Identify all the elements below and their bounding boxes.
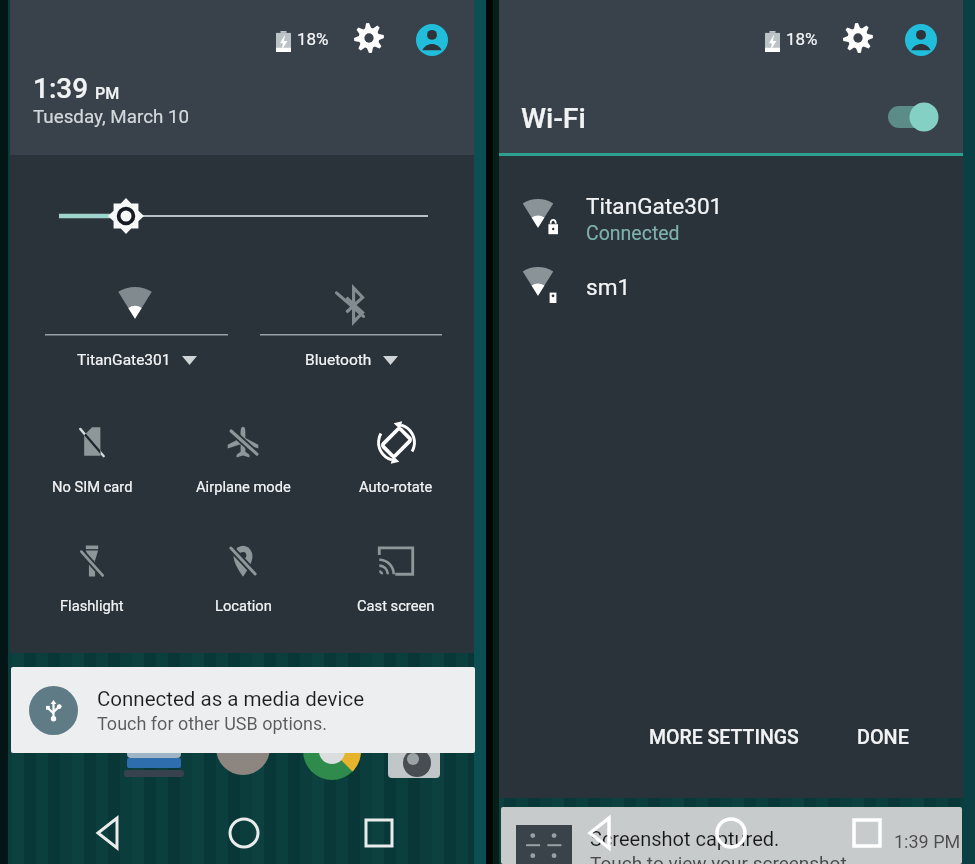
- staticText: No SIM card: [52, 478, 133, 495]
- button[interactable]: MORE SETTINGS: [637, 716, 811, 758]
- staticText: Wi-Fi: [521, 102, 586, 135]
- button[interactable]: Settings: [840, 20, 876, 56]
- button[interactable]: TitanGate301: [39, 265, 234, 383]
- staticText: Auto-rotate: [359, 478, 433, 495]
- button[interactable]: Cast screen: [326, 529, 466, 625]
- button[interactable]: User profile: [415, 23, 449, 57]
- staticText: TitanGate301: [586, 193, 723, 219]
- button[interactable]: Bluetooth: [254, 265, 448, 383]
- staticText: Screenshot captured.: [590, 827, 780, 850]
- staticText: DONE: [857, 726, 909, 749]
- staticText: PM: [95, 84, 120, 103]
- staticText: Airplane mode: [196, 478, 291, 495]
- button[interactable]: Home: [700, 802, 762, 864]
- staticText: Location: [215, 597, 272, 614]
- staticText: 1:39 PM: [894, 831, 961, 852]
- staticText: Cast screen: [357, 597, 435, 614]
- staticText: Connected as a media device: [97, 687, 365, 711]
- staticText: 1:39: [33, 72, 89, 105]
- staticText: Connected: [586, 222, 680, 245]
- staticText: Flashlight: [60, 597, 124, 614]
- staticText: Tuesday, March 10: [33, 106, 190, 128]
- staticText: Bluetooth: [305, 351, 372, 369]
- button[interactable]: TitanGate301: [499, 179, 963, 259]
- button[interactable]: Back: [570, 802, 632, 864]
- button[interactable]: Connected as a media device: [11, 667, 475, 753]
- button[interactable]: No SIM card: [22, 410, 162, 506]
- button[interactable]: Airplane mode: [173, 410, 313, 506]
- staticText: Touch to view your screenshot.: [590, 852, 852, 864]
- button[interactable]: Flashlight: [22, 529, 162, 625]
- button[interactable]: Location: [173, 529, 313, 625]
- staticText: TitanGate301: [77, 351, 171, 369]
- button[interactable]: Settings: [351, 20, 387, 56]
- staticText: 18%: [786, 29, 818, 49]
- button[interactable]: Recent apps: [836, 802, 898, 864]
- staticText: Touch for other USB options.: [97, 713, 328, 734]
- button[interactable]: Auto-rotate: [326, 410, 466, 506]
- button[interactable]: Recent apps: [348, 802, 410, 864]
- button[interactable]: User profile: [904, 23, 938, 57]
- staticText: sm1: [586, 274, 631, 300]
- button[interactable]: sm1: [499, 257, 963, 317]
- staticText: MORE SETTINGS: [649, 726, 799, 749]
- button[interactable]: Home: [213, 802, 275, 864]
- staticText: 18%: [297, 29, 329, 49]
- button[interactable]: Screenshot captured.: [501, 807, 962, 864]
- button[interactable]: DONE: [838, 716, 928, 758]
- button[interactable]: Wi-Fi toggle: [884, 98, 946, 136]
- button[interactable]: Back: [78, 802, 140, 864]
